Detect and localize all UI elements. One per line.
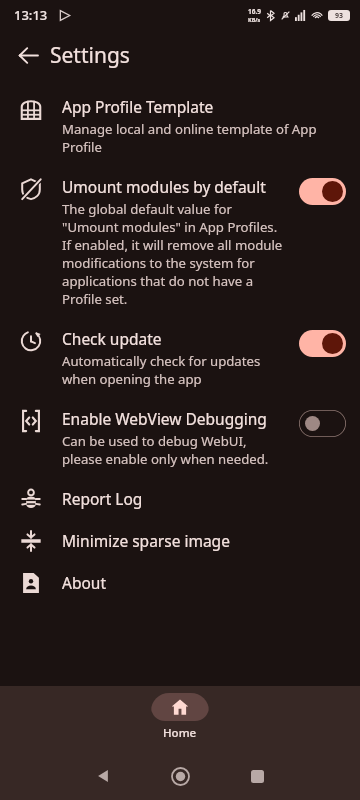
button[interactable]: Back	[88, 761, 118, 791]
button[interactable]: Back	[6, 33, 50, 77]
button[interactable]	[299, 410, 346, 437]
button[interactable]: App Profile Template	[0, 86, 360, 166]
staticText: 93	[335, 11, 344, 21]
staticText: Check update	[62, 328, 162, 349]
staticText: KB/s	[248, 16, 261, 23]
button[interactable]: Home	[151, 693, 209, 741]
button[interactable]: Check update	[0, 318, 360, 398]
button[interactable]: Report Log	[0, 478, 360, 520]
button[interactable]: Minimize sparse image	[0, 520, 360, 562]
staticText: Minimize sparse image	[62, 530, 230, 551]
staticText: About	[62, 572, 106, 593]
button[interactable]	[299, 330, 346, 357]
staticText: Can be used to debug WebUI, please enabl…	[62, 432, 289, 468]
staticText: Umount modules by default	[62, 176, 266, 197]
staticText: Report Log	[62, 488, 143, 509]
staticText: Enable WebView Debugging	[62, 408, 267, 429]
staticText: 16.9	[248, 7, 261, 16]
button[interactable]: Umount modules by default	[0, 166, 360, 318]
staticText: The global default value for "Umount mod…	[62, 200, 289, 308]
staticText: Home	[163, 725, 197, 741]
button[interactable]	[299, 178, 346, 205]
button[interactable]: Enable WebView Debugging	[0, 398, 360, 478]
button[interactable]: About	[0, 562, 360, 604]
staticText: Automatically check for updates when ope…	[62, 352, 289, 388]
staticText: Manage local and online template of App …	[62, 120, 346, 156]
staticText: 13:13	[14, 6, 48, 24]
staticText: Settings	[50, 41, 130, 70]
button[interactable]: Recents	[242, 761, 272, 791]
staticText: App Profile Template	[62, 96, 214, 117]
button[interactable]: Home	[165, 761, 195, 791]
